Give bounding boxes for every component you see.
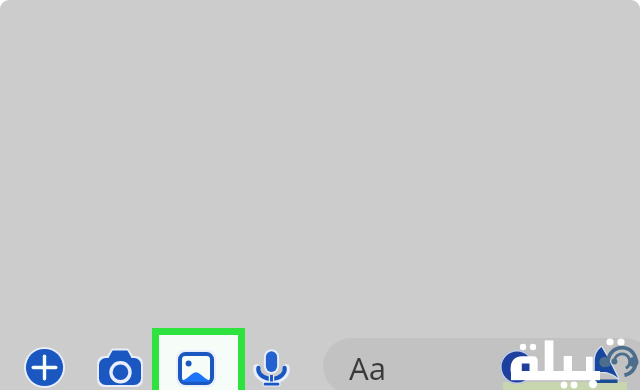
button[interactable]: Camera (99, 350, 141, 385)
staticText: Aa (349, 347, 387, 389)
button[interactable]: Voice message (256, 349, 287, 386)
button[interactable]: Add (24, 347, 65, 388)
button[interactable]: Gallery (152, 328, 245, 390)
button[interactable]: Aa (323, 338, 640, 390)
